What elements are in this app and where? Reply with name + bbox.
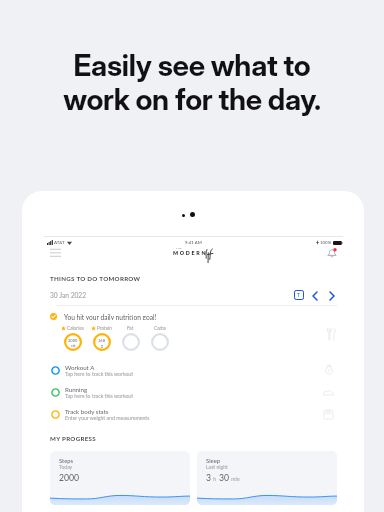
button[interactable]: Fat bbox=[116, 325, 145, 351]
staticText: T bbox=[297, 292, 301, 298]
staticText: 100% bbox=[320, 240, 332, 245]
staticText: THINGS TO DO TOMORROW bbox=[50, 275, 141, 282]
button[interactable]: Running bbox=[50, 381, 337, 403]
staticText: Easily see what to work on for the day. bbox=[63, 48, 321, 117]
staticText: 30 Jan 2022 bbox=[50, 291, 87, 299]
button[interactable]: Protein bbox=[87, 325, 116, 351]
staticText: 2000 bbox=[59, 472, 80, 482]
staticText: min bbox=[230, 476, 240, 482]
staticText: MODERN bbox=[173, 250, 208, 256]
staticText: Tap here to track this workout bbox=[65, 371, 134, 377]
staticText: Calories bbox=[67, 325, 84, 331]
staticText: THE bbox=[176, 247, 183, 250]
staticText: Steps bbox=[59, 457, 74, 464]
button[interactable]: Steps bbox=[50, 451, 190, 505]
button[interactable]: Previous day bbox=[309, 290, 320, 301]
button[interactable]: Today bbox=[294, 290, 304, 300]
staticText: Enter your weight and measurements bbox=[65, 415, 150, 421]
staticText: Sleep bbox=[206, 457, 221, 464]
staticText: g bbox=[101, 343, 103, 347]
staticText: Track body stats bbox=[65, 408, 109, 415]
staticText: Fat bbox=[127, 325, 134, 331]
staticText: Carbs bbox=[154, 325, 166, 331]
staticText: AT&T bbox=[54, 240, 65, 245]
staticText: Today bbox=[59, 464, 73, 470]
staticText: Last night bbox=[206, 464, 228, 470]
staticText: Workout A bbox=[65, 364, 95, 371]
button[interactable]: Menu bbox=[50, 246, 66, 262]
staticText: cal bbox=[71, 343, 76, 347]
staticText: Tap here to track this workout bbox=[65, 393, 134, 399]
button[interactable]: Track body stats bbox=[50, 403, 337, 425]
button[interactable]: Sleep bbox=[197, 451, 337, 505]
staticText: 2000 bbox=[68, 338, 78, 343]
staticText: Running bbox=[65, 386, 88, 393]
button[interactable]: Workout A bbox=[50, 359, 337, 381]
staticText: MY PROGRESS bbox=[50, 435, 96, 442]
staticText: You hit your daily nutrition goal! bbox=[64, 313, 157, 320]
button[interactable]: Next day bbox=[326, 290, 337, 301]
button[interactable]: Notifications bbox=[327, 248, 337, 258]
staticText: h bbox=[212, 476, 219, 482]
staticText: 9:41 AM bbox=[185, 240, 202, 245]
button[interactable]: Calories bbox=[58, 325, 87, 351]
staticText: 168 bbox=[98, 338, 106, 343]
staticText: Protein bbox=[97, 325, 112, 331]
staticText: 3 bbox=[206, 472, 212, 482]
staticText: 30 bbox=[219, 472, 230, 482]
button[interactable]: Carbs bbox=[145, 325, 174, 351]
